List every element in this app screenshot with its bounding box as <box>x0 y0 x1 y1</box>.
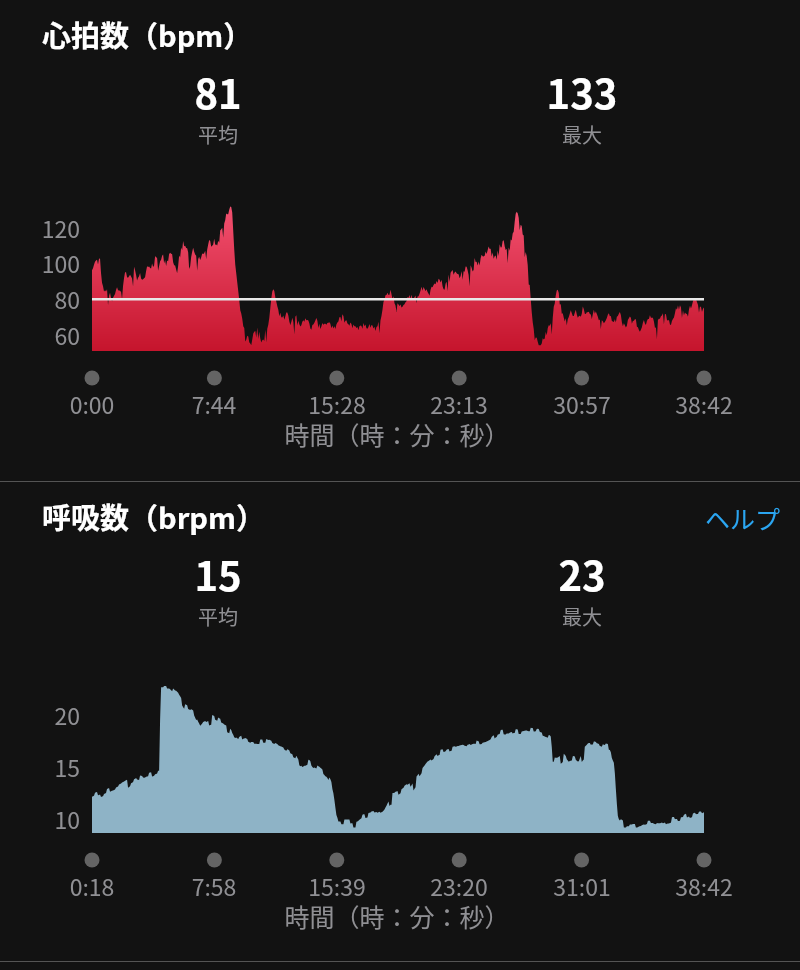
staticText: 20 <box>0 698 80 731</box>
staticText: 23:13 <box>399 387 519 420</box>
staticText: 時間（時：分：秒） <box>247 898 547 934</box>
staticText: 100 <box>0 246 80 279</box>
staticText: 最大 <box>512 602 652 631</box>
staticText: 23 <box>512 545 652 603</box>
button[interactable]: ヘルプ <box>620 500 780 536</box>
staticText: ヘルプ <box>620 500 780 536</box>
staticText: 10 <box>0 802 80 835</box>
staticText: 平均 <box>148 120 288 149</box>
staticText: 15:39 <box>277 869 397 902</box>
staticText: 15 <box>0 750 80 783</box>
staticText: 時間（時：分：秒） <box>247 416 547 452</box>
button[interactable]: 15 <box>148 537 288 632</box>
staticText: 30:57 <box>522 387 642 420</box>
staticText: 7:58 <box>154 869 274 902</box>
staticText: 15 <box>148 545 288 603</box>
staticText: 81 <box>148 63 288 121</box>
staticText: 0:18 <box>32 869 152 902</box>
staticText: 38:42 <box>644 387 764 420</box>
staticText: 最大 <box>512 120 652 149</box>
staticText: 133 <box>512 63 652 121</box>
staticText: 7:44 <box>154 387 274 420</box>
staticText: 呼吸数（brpm） <box>42 495 265 537</box>
staticText: 心拍数（bpm） <box>42 13 253 55</box>
staticText: 60 <box>0 318 80 351</box>
button[interactable]: 23 <box>512 537 652 632</box>
button[interactable]: 81 <box>148 55 288 150</box>
button[interactable]: 133 <box>512 55 652 150</box>
staticText: 31:01 <box>522 869 642 902</box>
staticText: 38:42 <box>644 869 764 902</box>
staticText: 120 <box>0 211 80 244</box>
staticText: 0:00 <box>32 387 152 420</box>
staticText: 23:20 <box>399 869 519 902</box>
staticText: 80 <box>0 282 80 315</box>
staticText: 平均 <box>148 602 288 631</box>
staticText: 15:28 <box>277 387 397 420</box>
